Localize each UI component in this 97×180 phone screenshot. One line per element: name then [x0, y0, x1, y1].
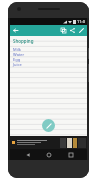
button[interactable]: Advertisement	[10, 136, 87, 149]
staticText: Water	[13, 52, 25, 57]
staticText: Milk	[13, 47, 21, 52]
staticText: 11:0	[77, 19, 85, 24]
button[interactable]: Back	[23, 150, 32, 159]
button[interactable]: Copy	[59, 26, 68, 35]
staticText: Shopping	[13, 38, 34, 44]
button[interactable]: Share	[68, 26, 77, 35]
button[interactable]: Back	[11, 26, 20, 35]
button[interactable]: Home	[44, 150, 53, 159]
button[interactable]: Recents	[66, 150, 75, 159]
button[interactable]: Edit	[77, 26, 86, 35]
staticText: Juice	[13, 62, 22, 67]
button[interactable]: Save note	[42, 119, 55, 132]
staticText: Egg	[13, 57, 21, 62]
